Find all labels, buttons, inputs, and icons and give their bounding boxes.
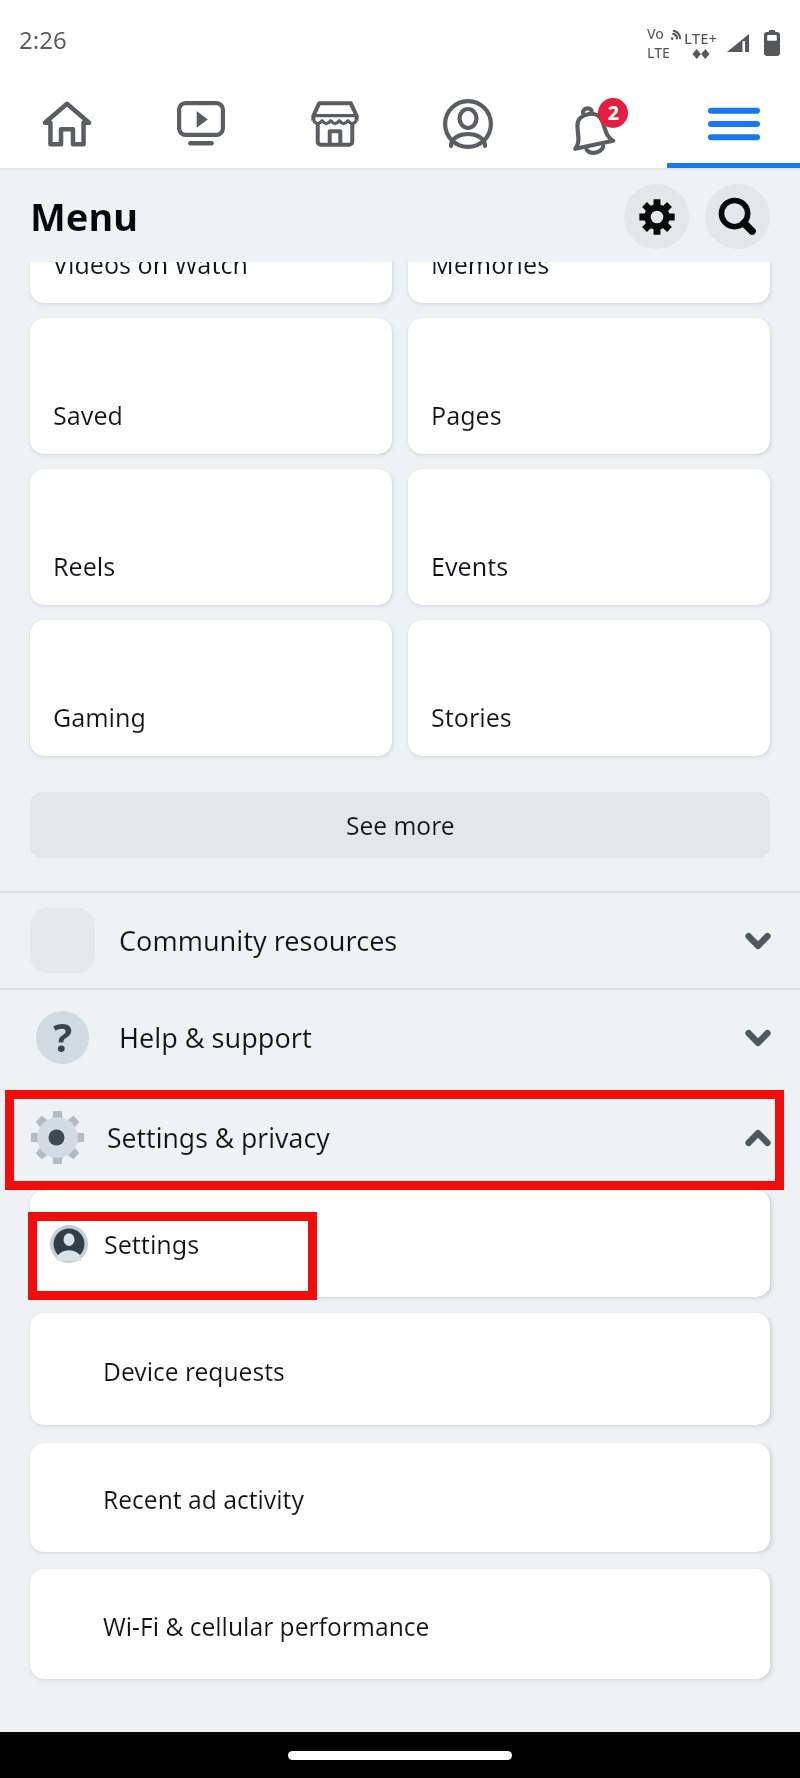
button[interactable]: Community resources [0, 893, 800, 988]
staticText: Reels [53, 549, 116, 583]
staticText: Device requests [103, 1355, 285, 1388]
button[interactable]: Saved [30, 318, 392, 454]
button[interactable]: Profile [401, 80, 534, 168]
staticText: LTE+ [684, 28, 718, 48]
staticText: Menu [30, 190, 138, 242]
staticText: ? [53, 1011, 73, 1062]
other: Expand [746, 933, 770, 949]
staticText: Memories [431, 262, 550, 281]
staticText: Recent ad activity [103, 1483, 304, 1516]
staticText: See more [346, 809, 455, 842]
button[interactable]: Menu [667, 80, 800, 168]
staticText: Help & support [119, 1019, 312, 1056]
button[interactable]: Memories [408, 262, 770, 303]
button[interactable]: Settings & privacy [0, 1085, 800, 1190]
button[interactable]: ? [0, 990, 800, 1085]
staticText: 2:26 [19, 23, 67, 56]
button[interactable]: Settings [30, 1190, 770, 1297]
staticText: Gaming [53, 700, 146, 734]
button[interactable]: Gaming [30, 620, 392, 756]
staticText: Wi-Fi & cellular performance [103, 1610, 430, 1643]
button[interactable]: Marketplace [268, 80, 401, 168]
staticText: Settings & privacy [107, 1120, 330, 1156]
staticText: Community resources [119, 922, 398, 959]
other: Expand [746, 1030, 770, 1046]
staticText: Saved [53, 398, 123, 432]
button[interactable]: Device requests [30, 1313, 770, 1425]
button[interactable]: Videos on Watch [30, 262, 392, 303]
button[interactable]: Search [705, 184, 770, 249]
button[interactable]: Reels [30, 469, 392, 605]
staticText: LTE [647, 43, 670, 62]
staticText: 2 [608, 100, 619, 126]
button[interactable]: See more [30, 792, 770, 858]
button[interactable]: Home [0, 80, 134, 168]
staticText: Vo [647, 24, 664, 43]
button[interactable]: Wi-Fi & cellular performance [30, 1569, 770, 1679]
button[interactable]: Events [408, 469, 770, 605]
button[interactable]: Stories [408, 620, 770, 756]
other: Collapse [746, 1130, 770, 1146]
staticText: Pages [431, 398, 502, 432]
button[interactable]: Recent ad activity [30, 1443, 770, 1552]
staticText: Videos on Watch [53, 262, 248, 281]
button[interactable]: Video [134, 80, 268, 168]
staticText: Events [431, 549, 509, 583]
button[interactable]: Pages [408, 318, 770, 454]
button[interactable]: Notifications [534, 80, 667, 168]
staticText: Stories [431, 700, 512, 734]
button[interactable]: Settings [624, 184, 689, 249]
staticText: Settings [104, 1227, 200, 1261]
